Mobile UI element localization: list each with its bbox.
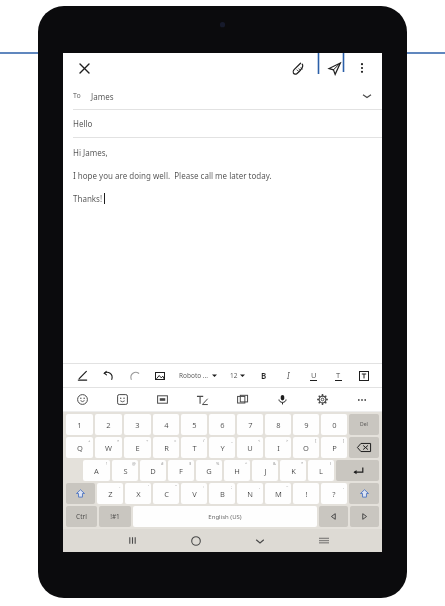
button[interactable]: E <box>124 437 151 458</box>
button[interactable]: To <box>73 83 372 109</box>
button[interactable]: More <box>342 388 382 411</box>
button[interactable]: Shift <box>349 483 379 504</box>
button[interactable]: 2 <box>95 414 122 435</box>
button[interactable]: M <box>265 483 291 504</box>
staticText: ÷ <box>146 438 149 443</box>
staticText: - <box>119 484 121 489</box>
staticText: P <box>332 443 337 453</box>
button[interactable]: B <box>209 483 235 504</box>
button[interactable]: G <box>196 460 222 481</box>
button[interactable]: I <box>276 364 301 387</box>
button[interactable]: 1 <box>66 414 93 435</box>
button[interactable]: 8 <box>265 414 291 435</box>
button[interactable]: A <box>83 460 110 481</box>
staticText: To <box>73 91 81 101</box>
staticText: Ctrl <box>76 512 87 521</box>
button[interactable]: !#1 <box>99 506 131 527</box>
staticText: Y <box>220 443 225 453</box>
button[interactable]: Send <box>322 56 346 80</box>
button[interactable]: GIF <box>142 388 182 411</box>
button[interactable]: F <box>168 460 194 481</box>
button[interactable]: I <box>265 437 291 458</box>
button[interactable]: U <box>301 364 326 387</box>
staticText: I hope you are doing well. Please call m… <box>73 170 272 181</box>
staticText: ~ <box>286 484 289 489</box>
button[interactable]: Redo <box>121 364 147 387</box>
button[interactable]: Voice input <box>262 388 302 411</box>
button[interactable]: H <box>224 460 250 481</box>
button[interactable]: Z <box>97 483 123 504</box>
button[interactable]: Emoji <box>63 388 102 411</box>
button[interactable]: Pen <box>69 364 95 387</box>
staticText: 5 <box>192 420 197 430</box>
staticText: 1 <box>77 420 82 430</box>
button[interactable]: D <box>140 460 166 481</box>
button[interactable]: 4 <box>153 414 179 435</box>
button[interactable]: More options <box>352 58 372 78</box>
staticText: ^ <box>245 461 248 466</box>
button[interactable]: P <box>321 437 347 458</box>
button[interactable]: Y <box>209 437 235 458</box>
button[interactable]: Recents <box>100 529 164 552</box>
button[interactable]: English (US) <box>133 506 317 527</box>
button[interactable]: 9 <box>293 414 319 435</box>
button[interactable]: Move cursor left <box>319 506 348 527</box>
button[interactable]: Enter <box>336 460 379 481</box>
button[interactable]: Roboto ... <box>172 364 223 387</box>
button[interactable]: Text box <box>351 364 376 387</box>
staticText: 12 <box>230 371 238 380</box>
staticText: Hi James, <box>73 147 108 158</box>
button[interactable]: 7 <box>237 414 263 435</box>
button[interactable]: L <box>308 460 334 481</box>
button[interactable]: Stickers <box>102 388 142 411</box>
button[interactable]: T <box>326 364 351 387</box>
button[interactable]: U <box>237 437 263 458</box>
button[interactable]: Del <box>349 414 379 435</box>
staticText: ; <box>231 484 233 489</box>
staticText: Q <box>77 443 83 453</box>
button[interactable]: ? <box>321 483 347 504</box>
button[interactable]: Insert image <box>147 364 172 387</box>
button[interactable]: R <box>153 437 179 458</box>
button[interactable]: O <box>293 437 319 458</box>
button[interactable]: Handwriting <box>182 388 222 411</box>
button[interactable]: W <box>95 437 122 458</box>
staticText: ! <box>106 461 108 466</box>
staticText: @ <box>132 461 136 466</box>
staticText: J <box>264 466 267 476</box>
button[interactable]: Home <box>164 529 228 552</box>
button[interactable]: Hide keyboard <box>228 529 292 552</box>
button[interactable]: Shift <box>66 483 95 504</box>
button[interactable]: X <box>125 483 151 504</box>
button[interactable]: T <box>181 437 207 458</box>
button[interactable]: B <box>251 364 276 387</box>
staticText: V <box>192 489 197 499</box>
button[interactable]: Clipboard <box>222 388 262 411</box>
button[interactable]: Q <box>66 437 93 458</box>
button[interactable]: 6 <box>209 414 235 435</box>
staticText: ] <box>343 438 345 443</box>
button[interactable]: V <box>181 483 207 504</box>
staticText: K <box>291 466 296 476</box>
button[interactable]: Ctrl <box>66 506 97 527</box>
button[interactable]: Backspace <box>349 437 379 458</box>
button[interactable]: 0 <box>321 414 347 435</box>
button[interactable]: K <box>280 460 306 481</box>
button[interactable]: ! <box>293 483 319 504</box>
button[interactable]: J <box>252 460 278 481</box>
button[interactable]: 5 <box>181 414 207 435</box>
staticText: S <box>123 466 128 476</box>
button[interactable]: N <box>237 483 263 504</box>
button[interactable]: C <box>153 483 179 504</box>
button[interactable]: Settings <box>302 388 342 411</box>
button[interactable]: Attach <box>286 56 310 80</box>
staticText: % <box>216 461 220 466</box>
button[interactable]: Switch keyboard <box>292 529 356 552</box>
button[interactable]: Undo <box>95 364 121 387</box>
button[interactable]: 3 <box>124 414 151 435</box>
staticText: 7 <box>248 420 253 430</box>
button[interactable]: 12 <box>223 364 251 387</box>
button[interactable]: Close <box>73 57 95 79</box>
button[interactable]: S <box>112 460 138 481</box>
button[interactable]: Move cursor right <box>350 506 379 527</box>
